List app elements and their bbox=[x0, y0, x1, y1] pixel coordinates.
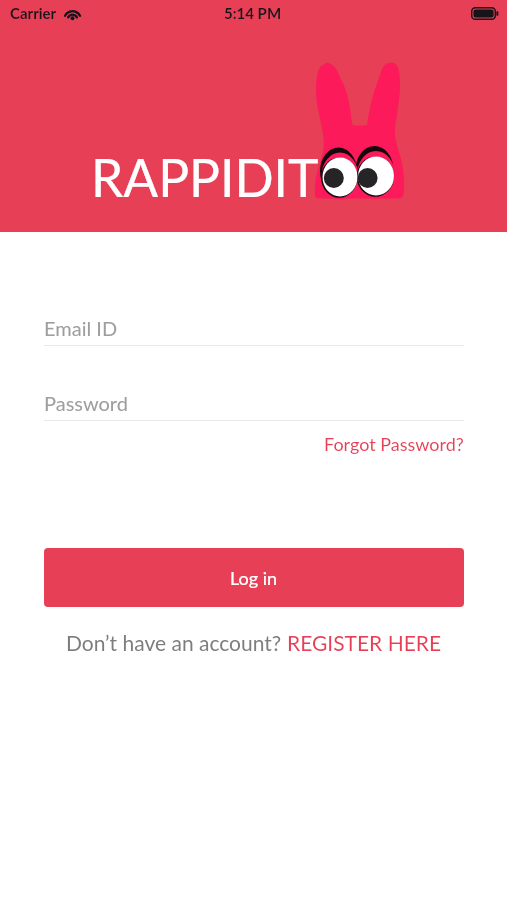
staticText: Don’t have an account? bbox=[66, 630, 287, 655]
button[interactable]: REGISTER HERE bbox=[287, 630, 442, 655]
other: Battery bbox=[471, 7, 499, 20]
button[interactable]: Forgot Password? bbox=[44, 432, 464, 456]
staticText: Forgot Password? bbox=[324, 433, 464, 455]
staticText: 5:14 PM bbox=[224, 4, 282, 22]
other: Wi-Fi bbox=[63, 6, 82, 20]
staticText: Email ID bbox=[44, 316, 118, 340]
staticText: Password bbox=[44, 391, 128, 415]
button[interactable]: Email ID bbox=[44, 316, 464, 347]
staticText: Carrier bbox=[10, 4, 57, 22]
staticText: Log in bbox=[230, 567, 278, 589]
other: Rappidito logo bbox=[313, 58, 405, 200]
button[interactable]: Log in bbox=[44, 548, 464, 607]
staticText: REGISTER HERE bbox=[287, 630, 442, 655]
staticText: RAPPIDITO bbox=[91, 146, 358, 208]
button[interactable]: Password bbox=[44, 391, 464, 422]
